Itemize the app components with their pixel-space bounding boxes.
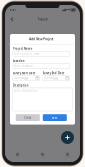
staticText: Description bbox=[13, 84, 29, 87]
button[interactable]: Profile bbox=[55, 149, 80, 162]
staticText: Home bbox=[15, 156, 19, 158]
staticText: dd/mm/yyyy bbox=[14, 76, 28, 80]
staticText: Survey End Date bbox=[43, 71, 65, 75]
staticText: Projects bbox=[39, 156, 45, 158]
staticText: Enter description bbox=[14, 89, 38, 92]
button[interactable]: Add project bbox=[61, 131, 74, 144]
staticText: Save bbox=[52, 116, 58, 119]
staticText: Location bbox=[13, 59, 25, 63]
button[interactable]: Back bbox=[9, 16, 15, 23]
staticText: Add New Project bbox=[29, 37, 53, 41]
staticText: Enter location bbox=[14, 64, 33, 68]
button[interactable]: Close bbox=[16, 114, 40, 121]
staticText: Enter project name bbox=[14, 52, 40, 55]
button[interactable]: Projects bbox=[30, 149, 55, 162]
staticText: 9:41 bbox=[9, 8, 16, 12]
staticText: Project bbox=[37, 18, 47, 21]
staticText: Project Name bbox=[13, 47, 33, 50]
button[interactable]: Save bbox=[43, 114, 67, 121]
button[interactable]: Home bbox=[5, 149, 30, 162]
staticText: dd/mm/yyyy bbox=[44, 76, 58, 80]
staticText: Close bbox=[24, 116, 32, 119]
staticText: Survey Start Date bbox=[13, 71, 36, 75]
